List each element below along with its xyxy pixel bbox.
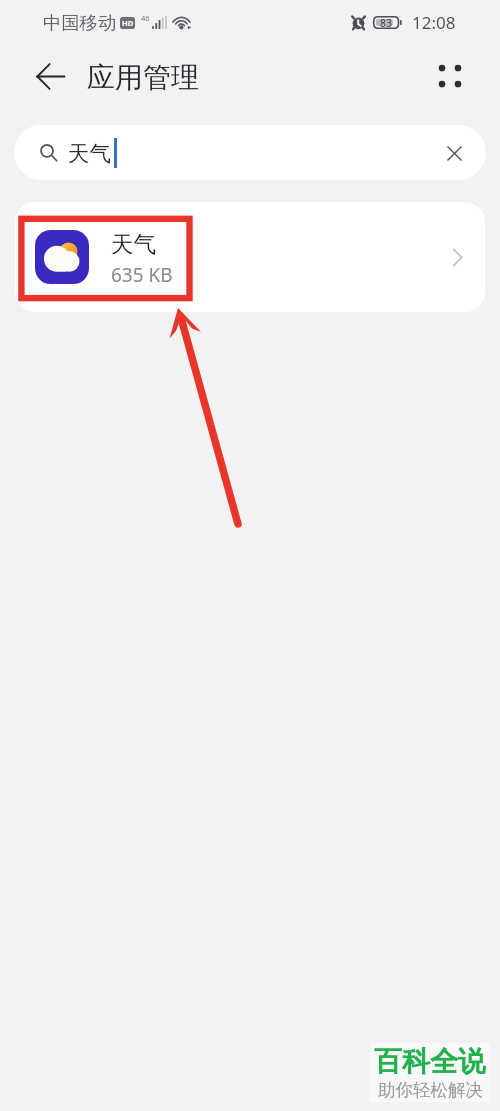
staticText: HD xyxy=(122,18,134,28)
staticText: 天气 xyxy=(68,140,111,167)
button[interactable]: 天气 xyxy=(14,125,486,180)
staticText: 百科全说 xyxy=(374,1044,486,1079)
button[interactable]: Clear text xyxy=(434,133,474,173)
staticText: 46 xyxy=(141,13,150,23)
staticText: 中国移动 xyxy=(43,11,117,34)
staticText: 天气 xyxy=(111,230,156,258)
button[interactable]: More options xyxy=(426,52,474,100)
staticText: 助你轻松解决 xyxy=(378,1079,483,1101)
button[interactable]: Back xyxy=(24,50,76,102)
staticText: 635 KB xyxy=(111,262,173,288)
button[interactable]: 天气 xyxy=(15,202,485,312)
staticText: 应用管理 xyxy=(87,60,199,95)
staticText: 12:08 xyxy=(412,11,456,34)
staticText: 83 xyxy=(380,16,393,30)
